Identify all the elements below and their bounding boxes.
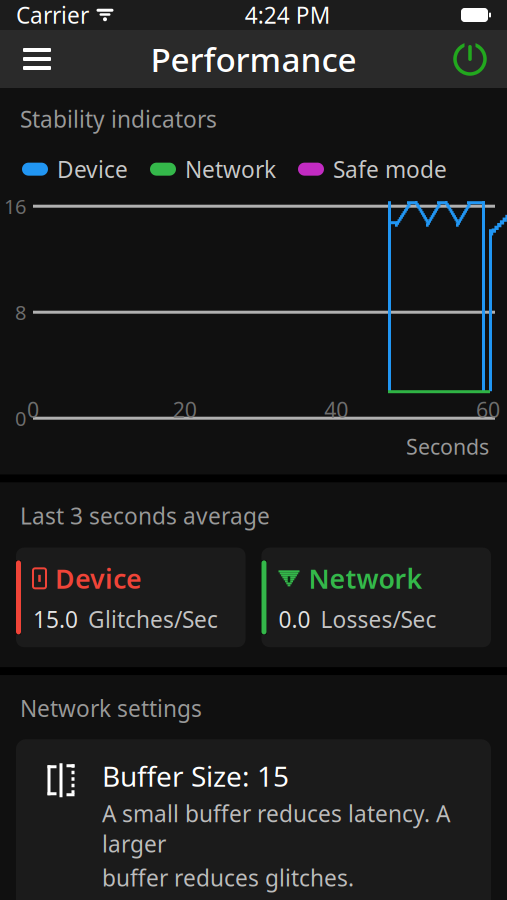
staticText: buffer reduces glitches. — [102, 863, 354, 893]
staticText: A small buffer reduces latency. A larger — [102, 798, 450, 859]
staticText: 16 — [4, 193, 26, 219]
staticText: Safe mode — [333, 154, 447, 184]
staticText: 4:24 PM — [245, 0, 331, 30]
staticText: 60 — [476, 395, 500, 423]
button[interactable]: Device — [16, 548, 245, 647]
button[interactable]: Network — [261, 548, 491, 647]
staticText: 15.0 — [33, 604, 78, 634]
staticText: Glitches/Sec — [88, 604, 218, 634]
staticText: Network settings — [20, 693, 202, 723]
staticText: Seconds — [406, 432, 489, 460]
staticText: Stability indicators — [20, 104, 217, 134]
button[interactable]: Buffer Size: 15 — [16, 739, 491, 900]
staticText: 40 — [324, 395, 348, 423]
staticText: Network — [185, 154, 276, 184]
staticText: Network — [308, 561, 422, 596]
staticText: 0 — [27, 395, 39, 423]
staticText: 0 — [15, 405, 26, 431]
staticText: Losses/Sec — [320, 604, 436, 634]
staticText: Performance — [150, 37, 356, 81]
staticText: Device — [57, 154, 128, 184]
staticText: Last 3 seconds average — [20, 500, 270, 531]
staticText: Carrier — [16, 0, 89, 30]
staticText: Device — [55, 561, 142, 596]
staticText: Buffer Size: 15 — [102, 757, 289, 794]
staticText: 0.0 — [278, 604, 310, 634]
button[interactable]: Power — [441, 30, 499, 88]
staticText: 20 — [173, 395, 197, 423]
staticText: 8 — [15, 299, 26, 325]
button[interactable]: Menu — [8, 30, 66, 88]
